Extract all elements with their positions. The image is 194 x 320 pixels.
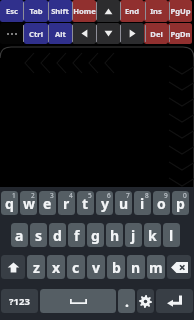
- staticText: Tab: [29, 6, 43, 16]
- button[interactable]: c: [67, 255, 85, 279]
- staticText: n: [131, 258, 141, 277]
- staticText: Alt: [55, 29, 66, 39]
- button[interactable]: Settings: [137, 289, 154, 313]
- staticText: k: [148, 226, 157, 245]
- staticText: Shift: [51, 6, 69, 16]
- staticText: 1: [12, 191, 16, 200]
- button[interactable]: Shift: [1, 255, 25, 279]
- button[interactable]: ?123: [1, 289, 38, 313]
- button[interactable]: Home: [72, 0, 96, 22]
- button[interactable]: l: [163, 223, 180, 247]
- staticText: 5: [88, 191, 92, 200]
- staticText: 4: [69, 191, 73, 200]
- button[interactable]: t: [77, 191, 94, 215]
- staticText: .: [125, 292, 129, 311]
- button[interactable]: m: [147, 255, 165, 279]
- staticText: u: [119, 194, 129, 213]
- staticText: a: [15, 226, 24, 245]
- staticText: l: [169, 226, 174, 245]
- staticText: j: [131, 226, 136, 245]
- button[interactable]: r: [58, 191, 75, 215]
- staticText: x: [52, 258, 61, 277]
- button[interactable]: f: [68, 223, 85, 247]
- button[interactable]: Shift: [48, 0, 72, 22]
- staticText: Ins: [150, 6, 162, 16]
- staticText: z: [33, 258, 40, 277]
- staticText: d: [53, 226, 62, 245]
- staticText: i: [140, 194, 145, 213]
- button[interactable]: y: [96, 191, 113, 215]
- button[interactable]: g: [87, 223, 104, 247]
- staticText: Ctrl: [29, 29, 43, 39]
- button[interactable]: .: [118, 289, 135, 313]
- button[interactable]: o: [153, 191, 170, 215]
- button[interactable]: Del: [144, 23, 168, 44]
- staticText: r: [63, 194, 70, 213]
- staticText: ?123: [9, 295, 30, 308]
- button[interactable]: Arrow key: [96, 0, 120, 22]
- button[interactable]: Arrow key: [120, 23, 144, 44]
- button[interactable]: z: [27, 255, 45, 279]
- staticText: g: [91, 226, 100, 245]
- button[interactable]: Arrow key: [96, 23, 120, 44]
- button[interactable]: Ctrl: [24, 23, 48, 44]
- staticText: v: [92, 258, 100, 277]
- button[interactable]: n: [127, 255, 145, 279]
- button[interactable]: i: [134, 191, 151, 215]
- staticText: s: [35, 226, 43, 245]
- staticText: 0: [183, 191, 187, 200]
- button[interactable]: a: [11, 223, 28, 247]
- staticText: PgUp: [170, 6, 191, 16]
- staticText: e: [43, 194, 52, 213]
- button[interactable]: Backspace: [167, 255, 191, 279]
- staticText: Home: [73, 6, 96, 16]
- staticText: h: [110, 226, 120, 245]
- staticText: 7: [126, 191, 130, 200]
- staticText: m: [149, 258, 163, 277]
- button[interactable]: u: [115, 191, 132, 215]
- button[interactable]: Space: [40, 289, 116, 313]
- staticText: c: [72, 258, 80, 277]
- staticText: b: [112, 258, 121, 277]
- button[interactable]: Alt: [48, 23, 72, 44]
- button[interactable]: d: [49, 223, 66, 247]
- button[interactable]: v: [87, 255, 105, 279]
- staticText: Esc: [6, 6, 18, 16]
- button[interactable]: j: [125, 223, 142, 247]
- button[interactable]: Arrow key: [72, 23, 96, 44]
- staticText: y: [101, 194, 109, 213]
- button[interactable]: Enter: [156, 289, 193, 313]
- button[interactable]: Ins: [144, 0, 168, 22]
- staticText: t: [82, 194, 89, 213]
- button[interactable]: p: [172, 191, 189, 215]
- staticText: 6: [107, 191, 111, 200]
- button[interactable]: PgUp: [168, 0, 192, 22]
- staticText: q: [5, 194, 14, 213]
- staticText: 9: [164, 191, 168, 200]
- staticText: PgDn: [170, 29, 191, 39]
- button[interactable]: b: [107, 255, 125, 279]
- staticText: End: [125, 6, 139, 16]
- button[interactable]: [0, 23, 24, 44]
- staticText: w: [23, 194, 35, 213]
- button[interactable]: w: [20, 191, 37, 215]
- button[interactable]: q: [1, 191, 18, 215]
- staticText: Del: [150, 29, 163, 39]
- staticText: f: [74, 226, 80, 245]
- staticText: 3: [50, 191, 54, 200]
- button[interactable]: s: [30, 223, 47, 247]
- button[interactable]: Esc: [0, 0, 24, 22]
- staticText: o: [157, 194, 166, 213]
- button[interactable]: Tab: [24, 0, 48, 22]
- staticText: 2: [31, 191, 35, 200]
- staticText: 8: [145, 191, 149, 200]
- button[interactable]: PgDn: [168, 23, 192, 44]
- button[interactable]: e: [39, 191, 56, 215]
- button[interactable]: h: [106, 223, 123, 247]
- button[interactable]: End: [120, 0, 144, 22]
- staticText: p: [176, 194, 185, 213]
- button[interactable]: x: [47, 255, 65, 279]
- button[interactable]: k: [144, 223, 161, 247]
